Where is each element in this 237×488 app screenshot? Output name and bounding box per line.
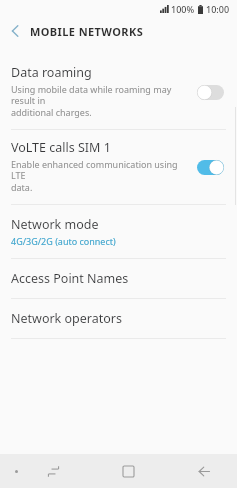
staticText: Data roaming xyxy=(11,64,92,81)
button[interactable]: Off xyxy=(191,81,229,103)
staticText: Using mobile data while roaming may resu… xyxy=(11,83,186,119)
staticText: Network operators xyxy=(11,310,122,327)
button[interactable]: Access Point Names xyxy=(0,259,237,298)
button[interactable]: Home xyxy=(107,454,149,488)
button[interactable]: Network operators xyxy=(0,299,237,338)
button[interactable]: Data roaming xyxy=(0,55,237,129)
button[interactable]: VoLTE calls SIM 1 xyxy=(0,130,237,204)
staticText: 10:00 xyxy=(206,3,230,15)
staticText: Access Point Names xyxy=(11,270,129,287)
staticText: Enable enhanced communication using LTE … xyxy=(11,158,186,194)
staticText: MOBILE NETWORKS xyxy=(30,24,144,39)
staticText: Network mode xyxy=(11,216,99,233)
button[interactable]: On xyxy=(191,156,229,178)
staticText: 4G/3G/2G (auto connect) xyxy=(11,235,116,247)
button[interactable]: Network mode xyxy=(0,205,237,258)
button[interactable]: Back xyxy=(0,18,30,44)
staticText: 100% xyxy=(171,3,195,15)
button[interactable]: Recents xyxy=(32,454,74,488)
staticText: VoLTE calls SIM 1 xyxy=(11,139,111,156)
button[interactable]: Back xyxy=(183,454,225,488)
